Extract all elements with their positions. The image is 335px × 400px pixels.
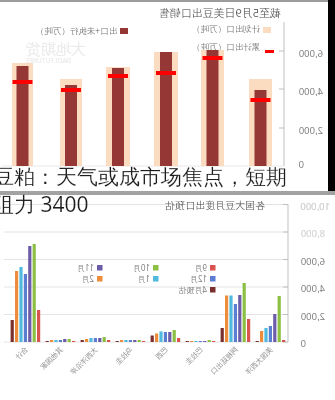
staticText: 豆粕：天气或成市场焦点，短期 — [0, 164, 287, 190]
button[interactable]: 豆粕：天气或成市场焦点，短期 — [0, 0, 335, 400]
staticText: 阻力 3400 — [0, 190, 89, 219]
